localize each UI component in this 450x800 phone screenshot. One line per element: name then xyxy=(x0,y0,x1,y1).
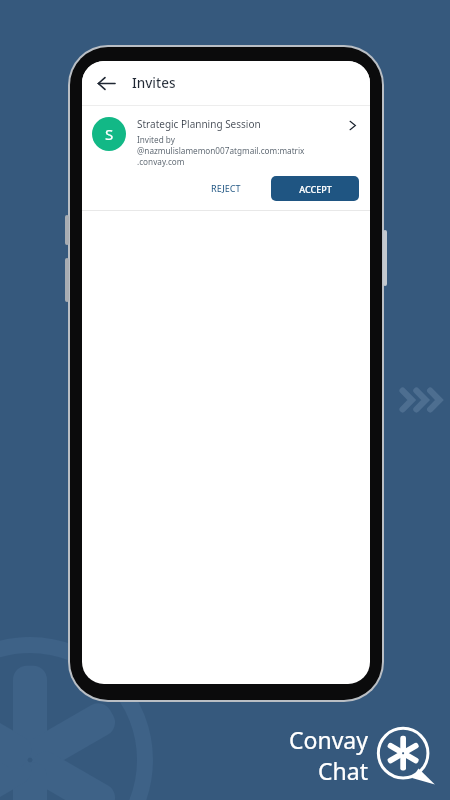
staticText: Invites xyxy=(132,74,176,92)
button[interactable]: S xyxy=(82,106,370,210)
staticText: REJECT xyxy=(211,182,241,194)
staticText: Strategic Planning Session xyxy=(137,117,261,131)
staticText: Invited by @nazmulislamemon007atgmail.co… xyxy=(137,134,338,167)
button[interactable]: ACCEPT xyxy=(271,176,359,201)
button[interactable]: REJECT xyxy=(199,175,253,201)
button[interactable]: Back xyxy=(88,65,124,101)
staticText: ACCEPT xyxy=(299,183,332,195)
staticText: S xyxy=(105,124,114,144)
staticText: Convay xyxy=(289,724,368,755)
staticText: Chat xyxy=(318,755,368,786)
